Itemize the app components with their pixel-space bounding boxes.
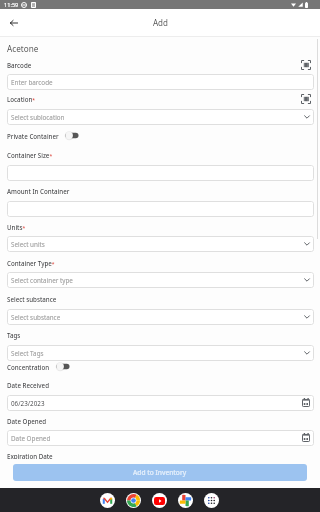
staticText: Add [153,17,168,28]
staticText: Expiration Date [7,452,53,460]
staticText: Container Type* [7,259,55,267]
button[interactable]: Concentration [56,362,70,371]
staticText: Barcode [7,61,32,69]
button[interactable]: Select substance [7,309,314,325]
button[interactable] [7,165,314,181]
button[interactable]: Enter barcode [7,74,314,90]
button[interactable]: YouTube [152,493,167,508]
button[interactable]: Photos [178,493,193,508]
button[interactable]: Select container type [7,272,314,288]
staticText: 06/23/2023 [11,399,45,408]
button[interactable]: Private Container [65,131,79,140]
staticText: Select units [11,240,45,249]
staticText: Date Received [7,381,49,389]
staticText: Select Tags [11,349,44,358]
button[interactable]: Select sublocation [7,109,314,125]
staticText: Add to Inventory [133,468,187,477]
staticText: Private Container [7,132,59,140]
staticText: Date Opened [7,417,47,425]
button[interactable]: All apps [204,493,219,508]
staticText: Tags [7,331,21,339]
button[interactable]: Date Opened [7,430,314,446]
button[interactable]: Chrome [126,493,141,508]
staticText: Select container type [11,276,73,285]
staticText: Container Size* [7,151,53,159]
staticText: Amount In Container [7,187,70,195]
button[interactable]: Gmail [100,493,115,508]
staticText: Acetone [7,43,39,54]
button[interactable]: Scan barcode [301,60,311,70]
button[interactable]: Select units [7,236,314,252]
staticText: Select substance [11,313,61,322]
button[interactable] [7,201,314,217]
staticText: Select sublocation [11,113,65,122]
button[interactable]: Scan barcode [301,94,311,104]
button[interactable]: 06/23/2023 [7,395,314,411]
button[interactable]: Add to Inventory [13,464,307,481]
staticText: Select substance [7,295,57,303]
button[interactable]: Select Tags [7,345,314,361]
button[interactable]: Back [5,14,23,32]
staticText: Date Opened [11,434,51,443]
staticText: Enter barcode [11,78,53,87]
staticText: 11:59 [4,1,19,9]
staticText: Concentration [7,363,50,371]
staticText: Location* [7,95,36,103]
staticText: Units* [7,223,26,231]
